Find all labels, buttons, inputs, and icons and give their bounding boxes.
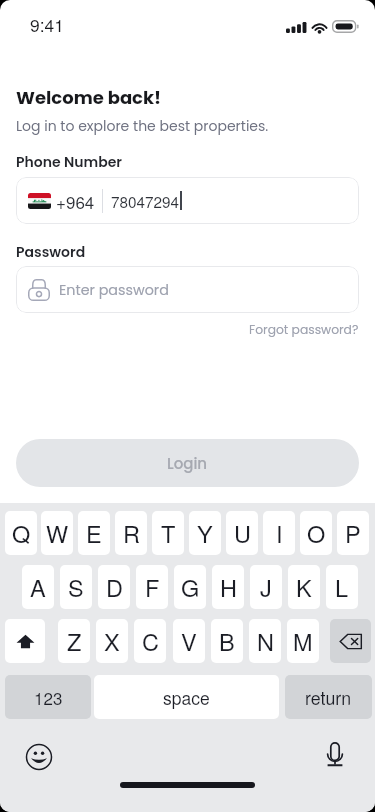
staticText: W <box>46 516 69 550</box>
staticText: A <box>30 570 46 604</box>
button[interactable]: Q <box>5 511 37 555</box>
staticText: space <box>163 685 210 710</box>
button[interactable]: C <box>134 619 166 663</box>
button[interactable]: O <box>300 511 332 555</box>
button[interactable]: Z <box>58 619 90 663</box>
button[interactable]: Login <box>16 439 359 487</box>
staticText: Y <box>197 516 213 550</box>
staticText: B <box>219 624 235 658</box>
staticText: H <box>220 570 237 604</box>
button[interactable]: return <box>285 675 372 719</box>
staticText: return <box>305 685 352 710</box>
button[interactable]: D <box>98 565 130 609</box>
button[interactable]: Dictation <box>322 741 348 767</box>
staticText: R <box>123 516 140 550</box>
staticText: T <box>161 516 176 550</box>
button[interactable]: X <box>96 619 128 663</box>
staticText: Phone Number <box>16 152 122 172</box>
button[interactable]: Y <box>189 511 221 555</box>
staticText: S <box>68 570 84 604</box>
staticText: 9:41 <box>30 12 65 37</box>
button[interactable]: 123 <box>5 675 91 719</box>
button[interactable]: U <box>226 511 258 555</box>
button[interactable]: space <box>94 675 279 719</box>
button[interactable]: M <box>287 619 319 663</box>
staticText: J <box>260 570 272 604</box>
staticText: V <box>181 624 197 658</box>
button[interactable]: Shift <box>5 619 45 663</box>
button[interactable]: K <box>288 565 320 609</box>
button[interactable]: S <box>60 565 92 609</box>
staticText: X <box>104 624 120 658</box>
button[interactable]: J <box>250 565 282 609</box>
button[interactable]: E <box>78 511 110 555</box>
staticText: G <box>181 570 200 604</box>
staticText: P <box>345 516 361 550</box>
staticText: Welcome back! <box>16 85 162 110</box>
button[interactable]: R <box>115 511 147 555</box>
button[interactable]: Backspace <box>330 619 371 663</box>
button[interactable]: B <box>211 619 243 663</box>
staticText: L <box>335 570 349 604</box>
button[interactable]: A <box>22 565 54 609</box>
staticText: D <box>106 570 123 604</box>
staticText: E <box>86 516 102 550</box>
button[interactable]: N <box>249 619 281 663</box>
staticText: U <box>234 516 251 550</box>
button[interactable]: G <box>174 565 206 609</box>
staticText: Z <box>67 624 82 658</box>
staticText: Password <box>16 242 86 262</box>
staticText: F <box>145 570 160 604</box>
staticText: 123 <box>34 685 63 709</box>
button[interactable]: H <box>212 565 244 609</box>
button[interactable]: I <box>263 511 295 555</box>
button[interactable]: Forgot password? <box>249 321 359 338</box>
button[interactable]: +964 <box>16 177 359 224</box>
button[interactable]: T <box>152 511 184 555</box>
button[interactable]: Enter password <box>16 266 359 313</box>
button[interactable]: L <box>326 565 358 609</box>
button[interactable]: F <box>136 565 168 609</box>
staticText: Log in to explore the best properties. <box>16 116 269 136</box>
staticText: K <box>296 570 312 604</box>
staticText: C <box>142 624 159 658</box>
staticText: +964 <box>56 189 95 213</box>
button[interactable]: W <box>41 511 73 555</box>
staticText: Q <box>12 516 31 550</box>
staticText: Forgot password? <box>249 321 359 338</box>
button[interactable]: V <box>173 619 205 663</box>
staticText: O <box>307 516 326 550</box>
staticText: Login <box>167 453 208 474</box>
staticText: I <box>276 516 283 550</box>
button[interactable]: Emoji keyboard <box>26 744 52 770</box>
button[interactable]: P <box>337 511 369 555</box>
staticText: N <box>257 624 274 658</box>
staticText: M <box>293 624 313 658</box>
staticText: Enter password <box>59 280 169 300</box>
staticText: 78047294 <box>111 190 180 212</box>
